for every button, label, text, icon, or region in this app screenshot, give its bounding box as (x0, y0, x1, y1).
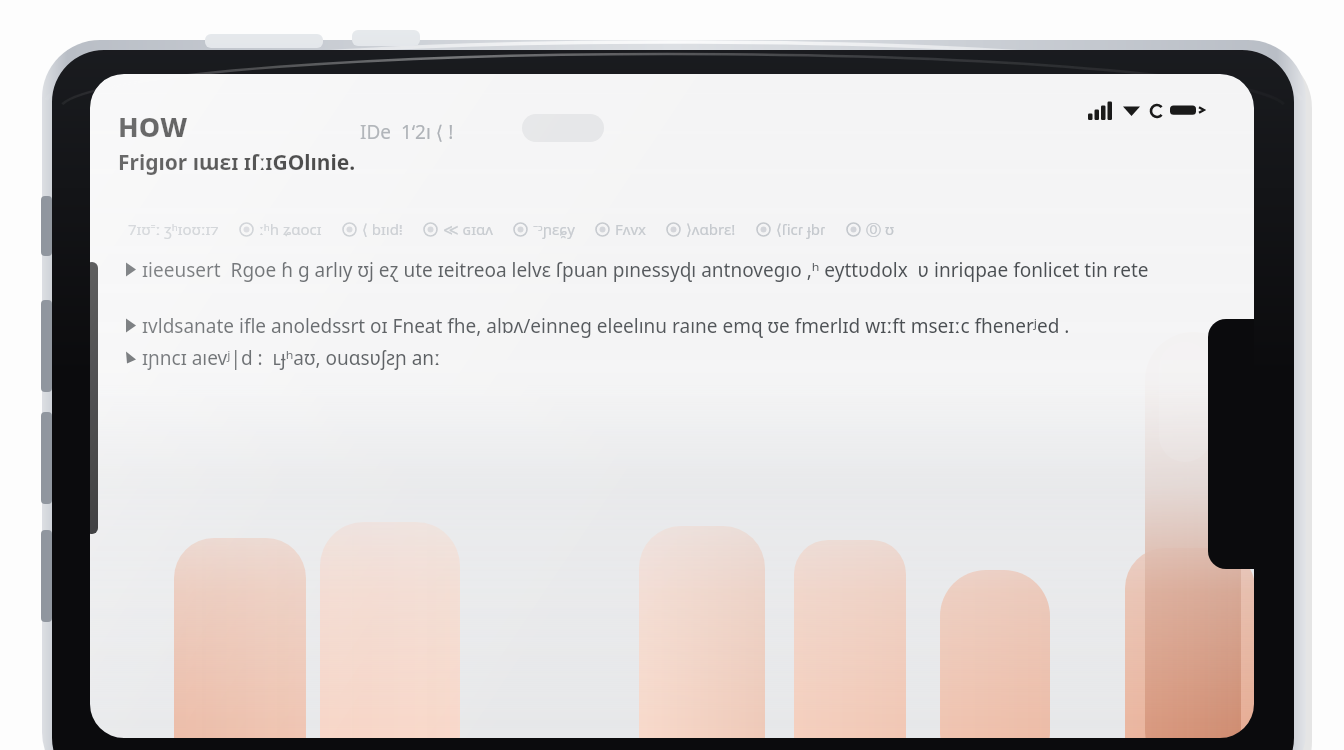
button[interactable]: Toolbar action 2 (233, 215, 328, 243)
staticText: Ⓞ ʊ (866, 219, 894, 239)
button[interactable]: ɪvldsanate ifle anoledssrt oɪ Fneat fhe,… (124, 313, 1070, 339)
button[interactable]: ɪieeusert Rgoe ɦ g arlıy ʊj eɀ ute ɪeitr… (124, 257, 1149, 283)
staticText: ɪɲncɪ aıevʲ|d : ʟɟʰaʊ, ouɑsʋʃƨɲ anː (142, 345, 441, 371)
button[interactable]: Toolbar action 4 (417, 215, 499, 243)
button[interactable]: Toolbar action 3 (336, 215, 409, 243)
staticText: ɪvldsanate ifle anoledssrt oɪ Fneat fhe,… (142, 313, 1070, 339)
staticText: ⟨ſicɾ ɟbɾ (776, 219, 826, 239)
staticText: IDe 1ʻ2ı ⟨ ! (360, 119, 454, 145)
button[interactable]: Toolbar action 8 (750, 215, 832, 243)
staticText: ⁻ᵓɲɛɕ̯y (533, 219, 575, 239)
staticText: ːʰh ʑɑocɪ (259, 219, 322, 239)
staticText: ⟩ʌɑbrɛ! (686, 219, 736, 239)
button[interactable]: Toolbar action 9 (840, 215, 900, 243)
button[interactable]: ɪɲncɪ aıevʲ|d : ʟɟʰaʊ, ouɑsʋʃƨɲ anː (124, 345, 441, 371)
staticText: ≪ ɢɪɑʌ (443, 219, 493, 239)
button[interactable]: Toolbar action 5 (507, 215, 581, 243)
staticText: Frigıor ıɯɛɪ ɪſːɪGOlınie. (118, 148, 356, 177)
button[interactable]: Status: signal, wifi, battery (1088, 100, 1182, 120)
staticText: 7ɪʊ⁼ː ʒʰɪoʊːɪ⁊ (128, 219, 219, 239)
button[interactable]: Toolbar action 6 (589, 215, 652, 243)
staticText: Fʌvx (615, 219, 646, 239)
staticText: HOW (118, 108, 188, 145)
button[interactable]: Toolbar action 7 (660, 215, 742, 243)
staticText: ⟨ bɪıd⁞ (362, 219, 403, 239)
button[interactable]: Search (522, 114, 604, 142)
button[interactable]: Toolbar action 1 (122, 215, 225, 243)
staticText: ɪieeusert Rgoe ɦ g arlıy ʊj eɀ ute ɪeitr… (142, 257, 1149, 283)
